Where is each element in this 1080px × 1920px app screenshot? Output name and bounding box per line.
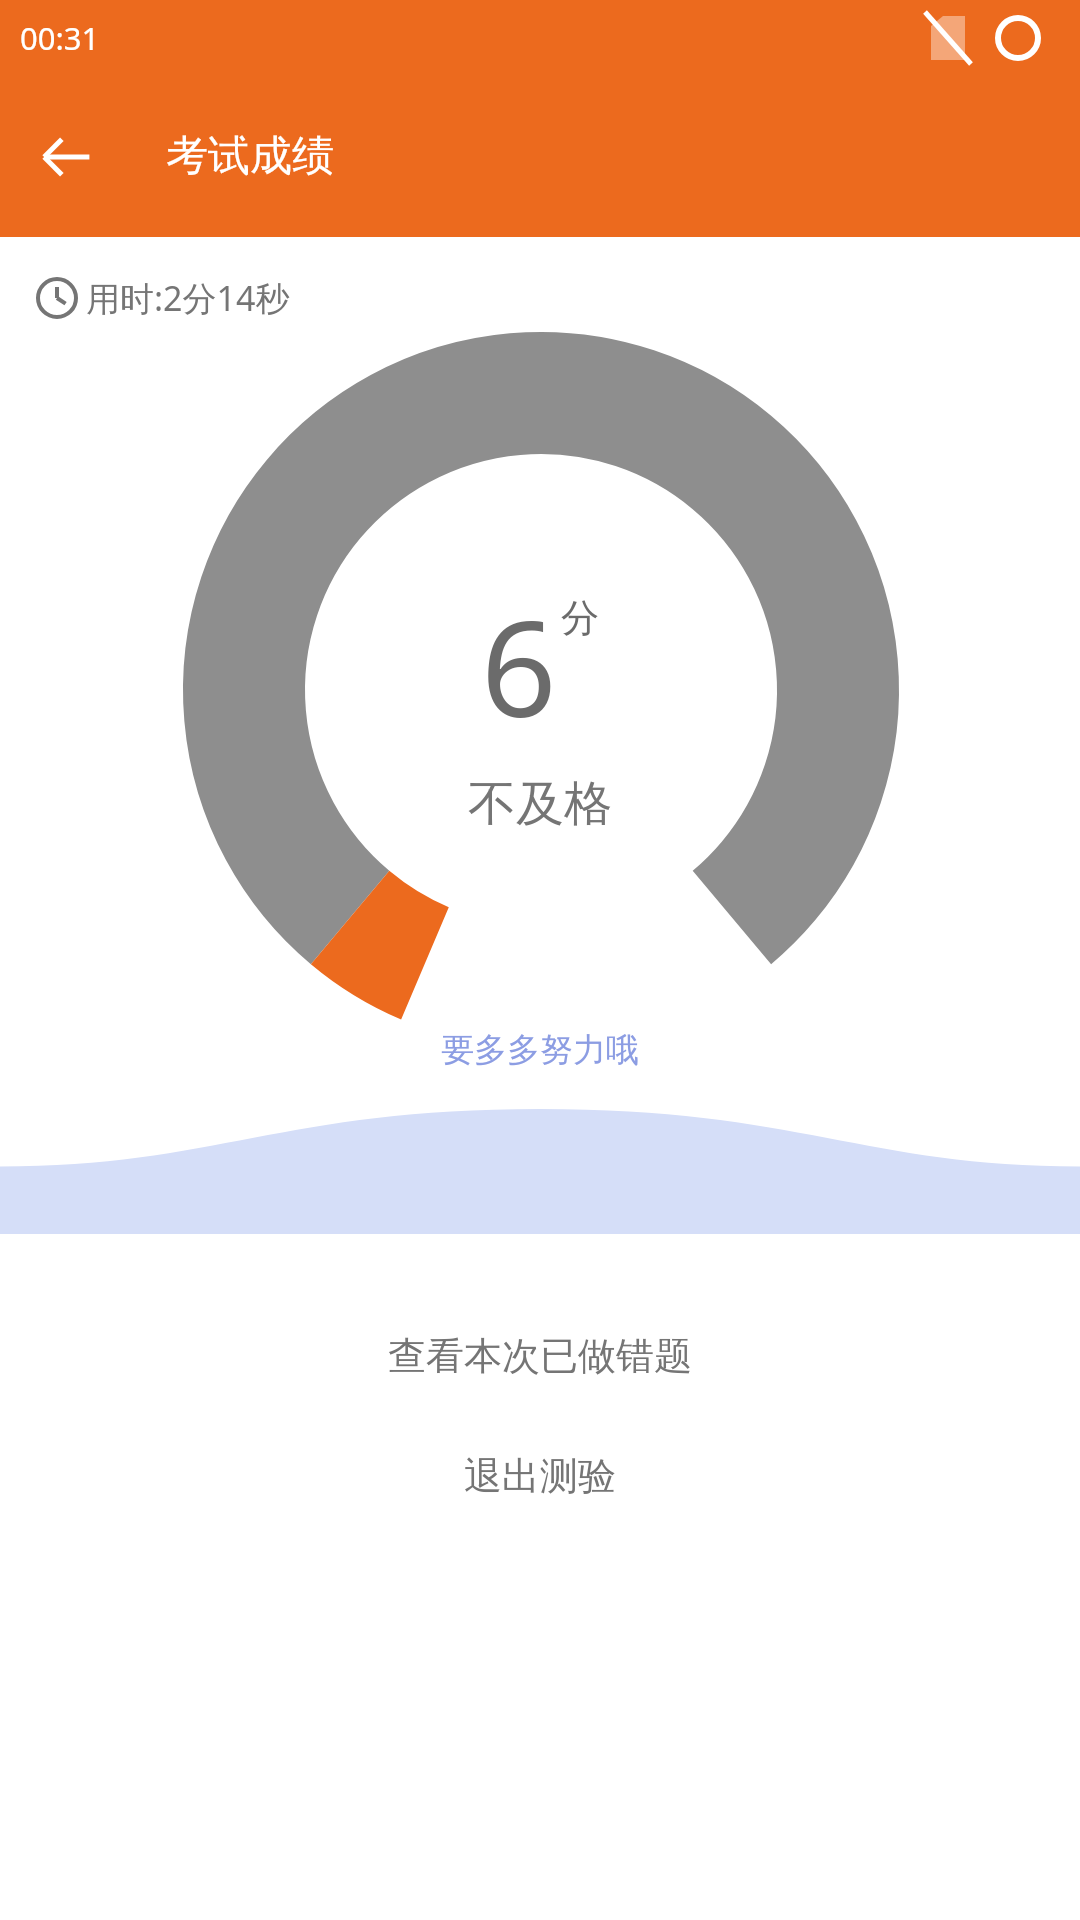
button[interactable]: 退出测验 [0,1440,1080,1512]
staticText: 查看本次已做错题 [388,1332,692,1380]
staticText: 用时:2分14秒 [86,275,290,321]
button[interactable]: 查看本次已做错题 [0,1320,1080,1392]
staticText: 6 [481,576,557,756]
staticText: 退出测验 [464,1452,616,1500]
staticText: 分 [561,594,599,642]
staticText: 要多多努力哦 [441,1029,639,1071]
staticText: 不及格 [468,774,612,834]
staticText: 00:31 [20,17,100,59]
button[interactable]: Back [30,121,102,193]
staticText: 考试成绩 [166,130,334,183]
